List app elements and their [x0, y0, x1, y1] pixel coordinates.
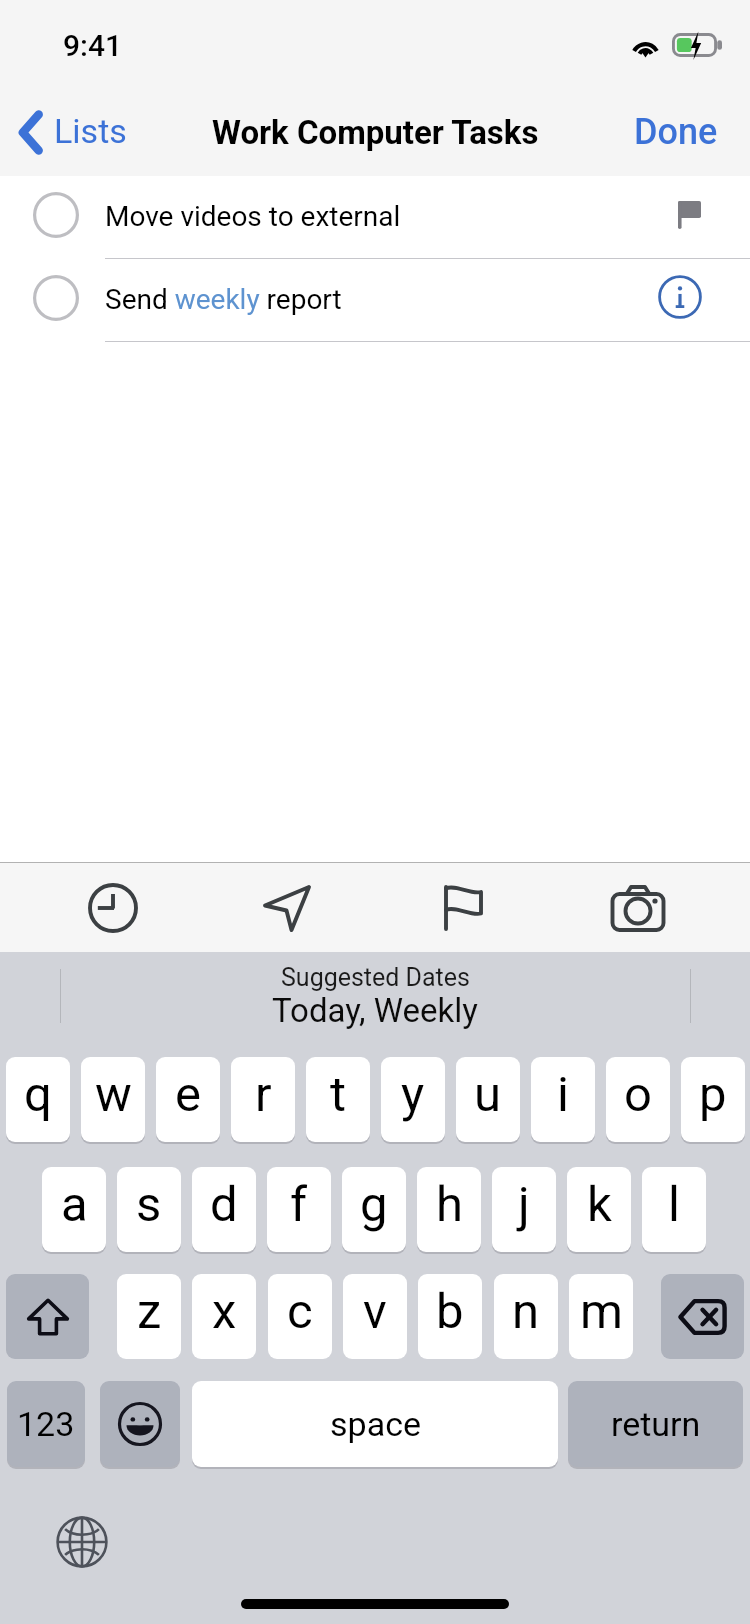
staticText: m [580, 1283, 623, 1340]
staticText: v [363, 1283, 387, 1340]
staticText: b [436, 1283, 464, 1340]
button[interactable]: s [117, 1167, 181, 1252]
staticText: h [436, 1176, 463, 1233]
button[interactable]: n [494, 1274, 558, 1359]
button[interactable]: Flag [416, 863, 510, 952]
staticText: f [290, 1176, 308, 1233]
button[interactable]: x [192, 1274, 256, 1359]
button[interactable]: Move videos to external [0, 176, 750, 259]
staticText: Suggested Dates [281, 963, 470, 992]
staticText: n [512, 1283, 540, 1340]
button[interactable]: return [568, 1381, 743, 1467]
button[interactable]: Send weekly report [0, 259, 750, 342]
staticText: u [474, 1066, 502, 1123]
staticText: Work Computer Tasks [212, 113, 539, 152]
button[interactable]: w [81, 1057, 145, 1142]
button[interactable]: u [456, 1057, 520, 1142]
button[interactable]: f [267, 1167, 331, 1252]
button[interactable]: r [231, 1057, 295, 1142]
staticText: g [360, 1176, 388, 1233]
button[interactable]: Shift [6, 1274, 89, 1359]
button[interactable]: a [42, 1167, 106, 1252]
staticText: l [668, 1176, 680, 1233]
staticText: r [255, 1066, 272, 1123]
button[interactable]: Switch keyboard [56, 1516, 108, 1568]
staticText: i [557, 1066, 569, 1123]
button[interactable]: p [681, 1057, 745, 1142]
button[interactable]: e [156, 1057, 220, 1142]
staticText: Done [634, 111, 718, 153]
staticText: a [61, 1176, 88, 1233]
button[interactable]: Backspace [661, 1274, 744, 1359]
button[interactable]: z [117, 1274, 181, 1359]
staticText: k [587, 1176, 612, 1233]
staticText: j [518, 1176, 530, 1233]
other: Flag [678, 201, 701, 229]
staticText: d [210, 1176, 238, 1233]
button[interactable]: k [567, 1167, 631, 1252]
button[interactable]: t [306, 1057, 370, 1142]
button[interactable]: l [642, 1167, 706, 1252]
staticText: p [699, 1066, 727, 1123]
staticText: 123 [17, 1404, 75, 1444]
staticText: y [401, 1066, 425, 1123]
button[interactable]: h [417, 1167, 481, 1252]
staticText: e [175, 1066, 201, 1123]
button[interactable]: Date and time [66, 863, 160, 952]
staticText: Send weekly report [105, 283, 342, 316]
button[interactable]: Lists [0, 88, 147, 176]
other: More info [658, 275, 702, 319]
button[interactable]: c [268, 1274, 332, 1359]
staticText: return [611, 1404, 701, 1444]
button[interactable]: Done [602, 88, 750, 176]
staticText: t [330, 1066, 347, 1123]
button[interactable]: 123 [7, 1381, 85, 1467]
button[interactable]: space [192, 1381, 558, 1467]
button[interactable]: i [531, 1057, 595, 1142]
button[interactable]: j [492, 1167, 556, 1252]
staticText: z [137, 1283, 162, 1340]
button[interactable]: Location [240, 863, 334, 952]
staticText: 9:41 [63, 28, 123, 63]
button[interactable]: q [6, 1057, 70, 1142]
staticText: o [624, 1066, 652, 1123]
staticText: Today, Weekly [272, 991, 478, 1030]
staticText: s [136, 1176, 162, 1233]
staticText: Lists [54, 111, 127, 151]
button[interactable]: o [606, 1057, 670, 1142]
staticText: x [212, 1283, 237, 1340]
staticText: w [95, 1066, 132, 1123]
button[interactable]: d [192, 1167, 256, 1252]
button[interactable]: y [381, 1057, 445, 1142]
staticText: Move videos to external [105, 200, 401, 233]
staticText: space [330, 1404, 421, 1444]
button[interactable]: Emoji [100, 1381, 180, 1467]
button[interactable]: m [569, 1274, 633, 1359]
staticText: q [24, 1066, 52, 1123]
button[interactable]: b [418, 1274, 482, 1359]
button[interactable]: Photo [591, 863, 685, 952]
staticText: c [287, 1283, 313, 1340]
button[interactable]: g [342, 1167, 406, 1252]
button[interactable]: v [343, 1274, 407, 1359]
